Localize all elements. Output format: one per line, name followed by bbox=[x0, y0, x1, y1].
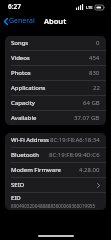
staticText: Wi-Fi Address bbox=[11, 136, 49, 144]
staticText: 6:27 bbox=[8, 2, 21, 11]
button[interactable]: General bbox=[0, 13, 41, 29]
button[interactable]: SEID bbox=[5, 178, 106, 193]
staticText: EID bbox=[11, 194, 21, 202]
staticText: 22 bbox=[93, 84, 100, 92]
staticText: Songs bbox=[11, 39, 29, 47]
button[interactable]: Applications bbox=[5, 81, 106, 96]
staticText: 8C:19:F8:A6:18:34 bbox=[50, 136, 100, 144]
other: Open bbox=[97, 183, 100, 188]
button[interactable]: Songs bbox=[5, 36, 106, 51]
staticText: 0 bbox=[96, 39, 100, 47]
staticText: Available bbox=[11, 114, 37, 122]
staticText: Capacity bbox=[11, 99, 35, 107]
staticText: SEID bbox=[11, 181, 25, 189]
button[interactable]: EID bbox=[5, 193, 106, 210]
button[interactable]: Bluetooth bbox=[5, 148, 106, 163]
button[interactable]: Videos bbox=[5, 51, 106, 66]
staticText: About bbox=[44, 16, 67, 26]
staticText: Bluetooth bbox=[11, 151, 39, 159]
staticText: Photos bbox=[11, 69, 31, 77]
staticText: Applications bbox=[11, 84, 46, 92]
button[interactable]: Available bbox=[5, 111, 106, 125]
staticText: Videos bbox=[11, 54, 30, 62]
button[interactable]: Wi-Fi Address bbox=[5, 133, 106, 148]
staticText: 64 GB bbox=[83, 99, 100, 107]
staticText: LTE bbox=[86, 5, 93, 10]
staticText: General bbox=[9, 16, 35, 26]
button[interactable]: Modem Firmware bbox=[5, 163, 106, 178]
staticText: 830 bbox=[89, 69, 100, 77]
staticText: Modem Firmware bbox=[11, 166, 61, 174]
staticText: 8C:19:F8:99:4D:C6 bbox=[49, 151, 100, 159]
staticText: 454 bbox=[89, 54, 100, 62]
staticText: 37.07 GB bbox=[74, 114, 100, 122]
button[interactable]: Photos bbox=[5, 66, 106, 81]
button[interactable]: Capacity bbox=[5, 96, 106, 111]
staticText: 4.28.00 bbox=[79, 166, 100, 174]
staticText: 89049032004888883600069360019955 bbox=[11, 203, 96, 209]
